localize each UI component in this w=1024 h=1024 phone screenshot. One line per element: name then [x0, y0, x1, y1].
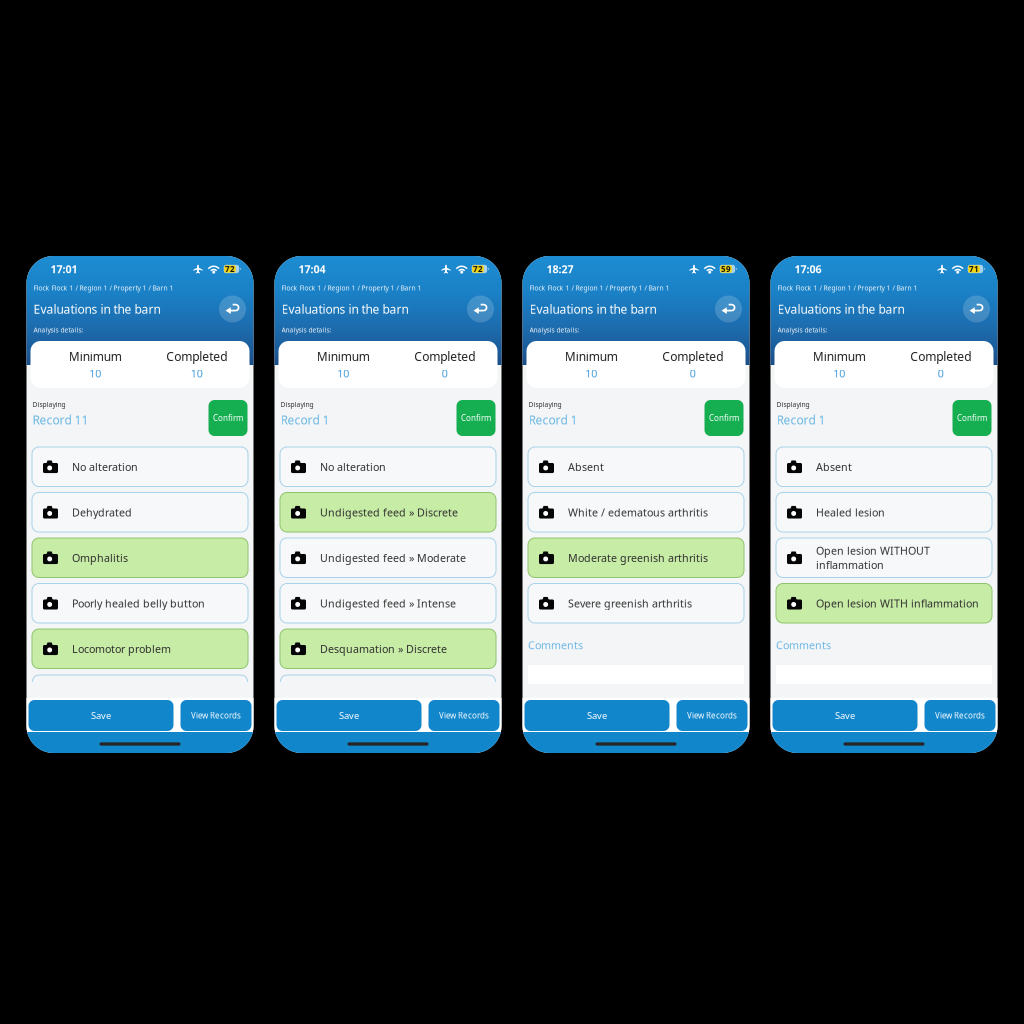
staticText: Absent: [568, 460, 604, 474]
staticText: Analysis details:: [777, 326, 827, 334]
staticText: Comments: [528, 638, 583, 652]
staticText: Healed lesion: [816, 505, 885, 519]
staticText: Record 1: [776, 412, 825, 428]
button[interactable]: Confirm: [704, 400, 743, 436]
button[interactable]: Save: [28, 700, 173, 731]
staticText: 59: [721, 264, 731, 274]
staticText: Absent: [816, 460, 852, 474]
staticText: Severe greenish arthritis: [568, 596, 692, 610]
staticText: 0: [442, 366, 448, 381]
button[interactable]: Healed lesion: [776, 492, 992, 532]
staticText: Record 11: [32, 412, 88, 428]
staticText: Flock Flock 1 / Region 1 / Property 1 / …: [33, 284, 173, 292]
staticText: 17:06: [794, 262, 821, 276]
button[interactable]: Open lesion WITHOUT inflammation: [776, 538, 992, 577]
button[interactable]: Severe greenish arthritis: [528, 583, 744, 623]
staticText: Evaluations in the barn: [529, 301, 656, 317]
button[interactable]: No alteration: [280, 447, 496, 486]
staticText: 10: [89, 366, 101, 381]
staticText: Dehydrated: [72, 505, 132, 519]
button[interactable]: View Records: [180, 700, 251, 731]
staticText: Poorly healed belly button: [72, 596, 205, 610]
staticText: Flock Flock 1 / Region 1 / Property 1 / …: [281, 284, 421, 292]
button[interactable]: Undigested feed » Intense: [280, 583, 496, 623]
staticText: 10: [337, 366, 349, 381]
staticText: Evaluations in the barn: [33, 301, 160, 317]
button[interactable]: Locomotor problem: [32, 629, 248, 668]
staticText: Displaying: [528, 400, 561, 409]
button[interactable]: Moderate greenish arthritis: [528, 538, 744, 577]
button[interactable]: White / edematous arthritis: [528, 492, 744, 532]
staticText: Evaluations in the barn: [281, 301, 408, 317]
staticText: Analysis details:: [529, 326, 579, 334]
staticText: 0: [938, 366, 944, 381]
button[interactable]: No alteration: [32, 447, 248, 486]
staticText: Minimum: [565, 348, 618, 364]
staticText: Analysis details:: [33, 326, 83, 334]
staticText: Save: [91, 709, 111, 722]
staticText: 10: [833, 366, 845, 381]
staticText: View Records: [687, 710, 737, 721]
staticText: Moderate greenish arthritis: [568, 551, 708, 565]
staticText: Undigested feed » Discrete: [320, 505, 458, 519]
staticText: Save: [587, 709, 607, 722]
staticText: Confirm: [213, 413, 243, 423]
staticText: 10: [191, 366, 203, 381]
button[interactable]: Back: [963, 295, 990, 322]
button[interactable]: Absent: [528, 447, 744, 486]
button[interactable]: Save: [276, 700, 421, 731]
staticText: Displaying: [776, 400, 809, 409]
staticText: Open lesion WITH inflammation: [816, 596, 979, 610]
button[interactable]: Undigested feed » Discrete: [280, 492, 496, 532]
staticText: 17:04: [298, 262, 325, 276]
button[interactable]: Confirm: [456, 400, 495, 436]
staticText: 72: [225, 264, 235, 274]
button[interactable]: Absent: [776, 447, 992, 486]
staticText: Omphalitis: [72, 551, 128, 565]
staticText: Save: [339, 709, 359, 722]
staticText: View Records: [935, 710, 985, 721]
button[interactable]: Undigested feed » Moderate: [280, 538, 496, 577]
staticText: Minimum: [69, 348, 122, 364]
staticText: Displaying: [32, 400, 65, 409]
button[interactable]: Poorly healed belly button: [32, 583, 248, 623]
button[interactable]: Omphalitis: [32, 538, 248, 577]
staticText: 0: [690, 366, 696, 381]
staticText: Analysis details:: [281, 326, 331, 334]
staticText: View Records: [191, 710, 241, 721]
button[interactable]: View Records: [428, 700, 499, 731]
staticText: Undigested feed » Intense: [320, 596, 456, 610]
button[interactable]: Back: [467, 295, 494, 322]
staticText: Confirm: [709, 413, 739, 423]
staticText: Displaying: [280, 400, 313, 409]
staticText: Completed: [414, 348, 475, 364]
staticText: Undigested feed » Moderate: [320, 551, 466, 565]
button[interactable]: Save: [524, 700, 669, 731]
button[interactable]: Open lesion WITH inflammation: [776, 583, 992, 623]
button[interactable]: Back: [715, 295, 742, 322]
button[interactable]: Save: [772, 700, 917, 731]
staticText: Flock Flock 1 / Region 1 / Property 1 / …: [777, 284, 917, 292]
staticText: 71: [969, 264, 979, 274]
staticText: Record 1: [280, 412, 329, 428]
staticText: Completed: [662, 348, 723, 364]
button[interactable]: Confirm: [952, 400, 991, 436]
staticText: 17:01: [50, 262, 77, 276]
staticText: Evaluations in the barn: [777, 301, 904, 317]
button[interactable]: View Records: [924, 700, 995, 731]
staticText: Minimum: [317, 348, 370, 364]
staticText: No alteration: [72, 460, 138, 474]
button[interactable]: View Records: [676, 700, 747, 731]
staticText: Flock Flock 1 / Region 1 / Property 1 / …: [529, 284, 669, 292]
staticText: Confirm: [957, 413, 987, 423]
button[interactable]: Confirm: [208, 400, 247, 436]
button[interactable]: Desquamation » Discrete: [280, 629, 496, 668]
staticText: Open lesion WITHOUT inflammation: [816, 544, 930, 572]
button[interactable]: Dehydrated: [32, 492, 248, 532]
staticText: Locomotor problem: [72, 642, 171, 656]
button[interactable]: Back: [219, 295, 246, 322]
staticText: Record 1: [528, 412, 577, 428]
staticText: Confirm: [461, 413, 491, 423]
staticText: Desquamation » Discrete: [320, 642, 447, 656]
staticText: Minimum: [813, 348, 866, 364]
